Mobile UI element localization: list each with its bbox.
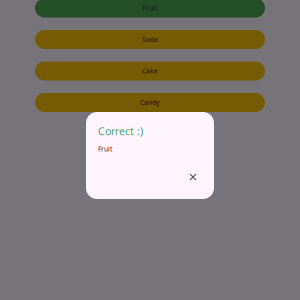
- staticText: Fruit: [98, 145, 112, 153]
- button[interactable]: Close: [186, 170, 200, 184]
- button[interactable]: Fruit: [35, 0, 265, 17]
- staticText: Fruit: [142, 4, 158, 12]
- staticText: Candy: [140, 98, 160, 107]
- button[interactable]: Candy: [35, 93, 265, 112]
- staticText: Cake: [142, 67, 158, 75]
- staticText: Correct :): [98, 124, 143, 138]
- button[interactable]: Cake: [35, 61, 265, 80]
- button[interactable]: Soda: [35, 30, 265, 49]
- staticText: Soda: [142, 35, 158, 44]
